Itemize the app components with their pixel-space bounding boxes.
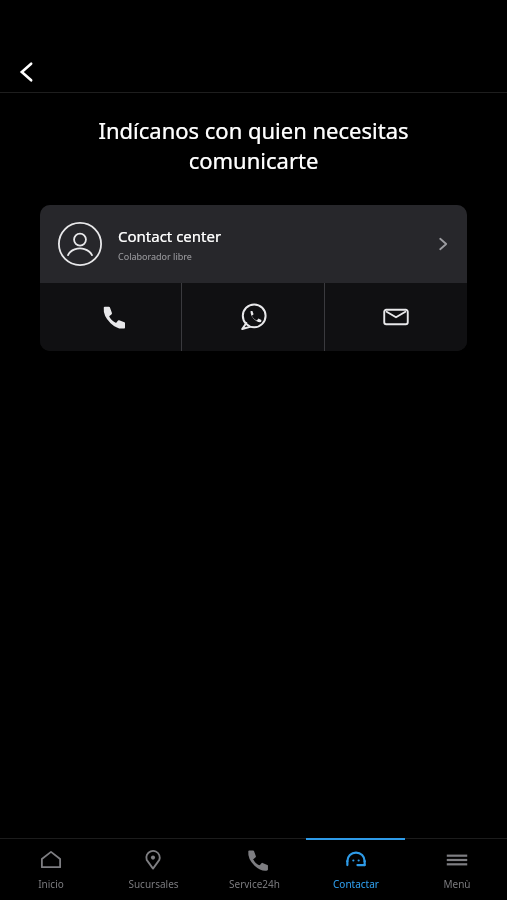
staticText: Contact center — [118, 226, 222, 246]
staticText: Sucursales — [128, 877, 179, 891]
button[interactable]: Inicio — [0, 838, 102, 900]
staticText: Contactar — [333, 877, 379, 891]
button[interactable]: Contactar — [305, 838, 406, 900]
button[interactable]: Menù — [406, 838, 507, 900]
staticText: Indícanos con quien necesitas comunicart… — [36, 115, 471, 176]
button[interactable]: WhatsApp — [182, 283, 324, 351]
button[interactable]: Service24h — [204, 838, 305, 900]
staticText: Colaborador libre — [118, 250, 192, 262]
button[interactable]: Contact center — [40, 205, 467, 283]
staticText: Inicio — [38, 877, 64, 891]
button[interactable]: Back — [4, 49, 50, 95]
staticText: Menù — [443, 877, 471, 891]
staticText: Service24h — [229, 877, 280, 891]
button[interactable]: Email — [325, 283, 467, 351]
button[interactable]: Call — [40, 283, 181, 351]
button[interactable]: Sucursales — [102, 838, 204, 900]
